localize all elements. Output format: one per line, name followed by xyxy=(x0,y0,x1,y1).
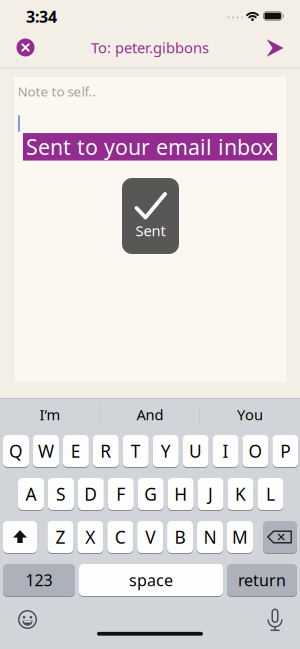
button[interactable]: Z xyxy=(47,520,73,553)
button[interactable]: P xyxy=(272,434,298,467)
staticText: Sent xyxy=(135,221,165,240)
staticText: P xyxy=(280,439,290,462)
staticText: X xyxy=(85,525,95,548)
button[interactable]: Q xyxy=(3,434,29,467)
button[interactable]: You xyxy=(237,405,263,424)
staticText: 123 xyxy=(25,569,52,591)
staticText: I xyxy=(222,439,228,462)
button[interactable]: H xyxy=(168,477,194,510)
button[interactable]: S xyxy=(48,477,74,510)
button[interactable]: V xyxy=(137,520,163,553)
button[interactable]: C xyxy=(107,520,133,553)
staticText: F xyxy=(116,482,125,505)
staticText: K xyxy=(235,482,246,505)
button[interactable]: J xyxy=(198,477,224,510)
button[interactable]: T xyxy=(123,434,149,467)
button[interactable]: L xyxy=(257,477,283,510)
button[interactable]: F xyxy=(108,477,134,510)
staticText: Q xyxy=(9,439,23,462)
button[interactable]: W xyxy=(33,434,59,467)
button[interactable]: return xyxy=(227,563,297,596)
button[interactable]: M xyxy=(227,520,253,553)
staticText: O xyxy=(248,439,262,462)
button[interactable]: Dictate xyxy=(266,608,284,632)
staticText: To: peter.gibbons xyxy=(91,38,209,57)
staticText: L xyxy=(266,482,275,505)
staticText: return xyxy=(238,569,286,591)
button[interactable]: I xyxy=(212,434,238,467)
button[interactable]: A xyxy=(18,477,44,510)
staticText: G xyxy=(144,482,157,505)
button[interactable]: R xyxy=(93,434,119,467)
button[interactable]: K xyxy=(227,477,253,510)
button[interactable]: O xyxy=(242,434,268,467)
staticText: U xyxy=(189,439,202,462)
button[interactable]: Send xyxy=(266,38,284,57)
staticText: You xyxy=(237,405,263,424)
staticText: E xyxy=(71,439,81,462)
button[interactable]: B xyxy=(167,520,193,553)
staticText: I’m xyxy=(39,405,60,424)
button[interactable]: Delete xyxy=(263,520,297,553)
button[interactable]: U xyxy=(183,434,209,467)
staticText: M xyxy=(232,525,248,548)
button[interactable]: I’m xyxy=(39,405,60,424)
button[interactable]: Y xyxy=(153,434,179,467)
button[interactable]: X xyxy=(77,520,103,553)
staticText: R xyxy=(100,439,111,462)
staticText: J xyxy=(208,482,213,505)
staticText: T xyxy=(131,439,141,462)
staticText: B xyxy=(175,525,186,548)
button[interactable]: D xyxy=(78,477,104,510)
button[interactable]: And xyxy=(136,405,163,424)
button[interactable]: G xyxy=(138,477,164,510)
button[interactable]: Emoji xyxy=(17,609,37,629)
staticText: V xyxy=(145,525,155,548)
staticText: N xyxy=(204,525,217,548)
staticText: A xyxy=(25,482,36,505)
staticText: Z xyxy=(55,525,65,548)
staticText: Note to self.. xyxy=(17,82,96,100)
staticText: H xyxy=(174,482,187,505)
staticText: W xyxy=(38,439,54,462)
button[interactable]: N xyxy=(197,520,223,553)
staticText: C xyxy=(115,525,126,548)
button[interactable]: space xyxy=(79,563,223,596)
button[interactable]: E xyxy=(63,434,89,467)
staticText: Y xyxy=(161,439,171,462)
button[interactable]: To: peter.gibbons xyxy=(91,38,209,57)
staticText: space xyxy=(129,569,173,591)
staticText: Sent to your email inbox xyxy=(26,133,273,161)
staticText: S xyxy=(56,482,66,505)
button[interactable]: 123 xyxy=(3,563,75,596)
staticText: And xyxy=(136,405,163,424)
button[interactable]: Shift xyxy=(3,520,37,553)
staticText: 3:34 xyxy=(26,6,57,27)
button[interactable]: Close xyxy=(16,38,34,56)
staticText: D xyxy=(84,482,97,505)
